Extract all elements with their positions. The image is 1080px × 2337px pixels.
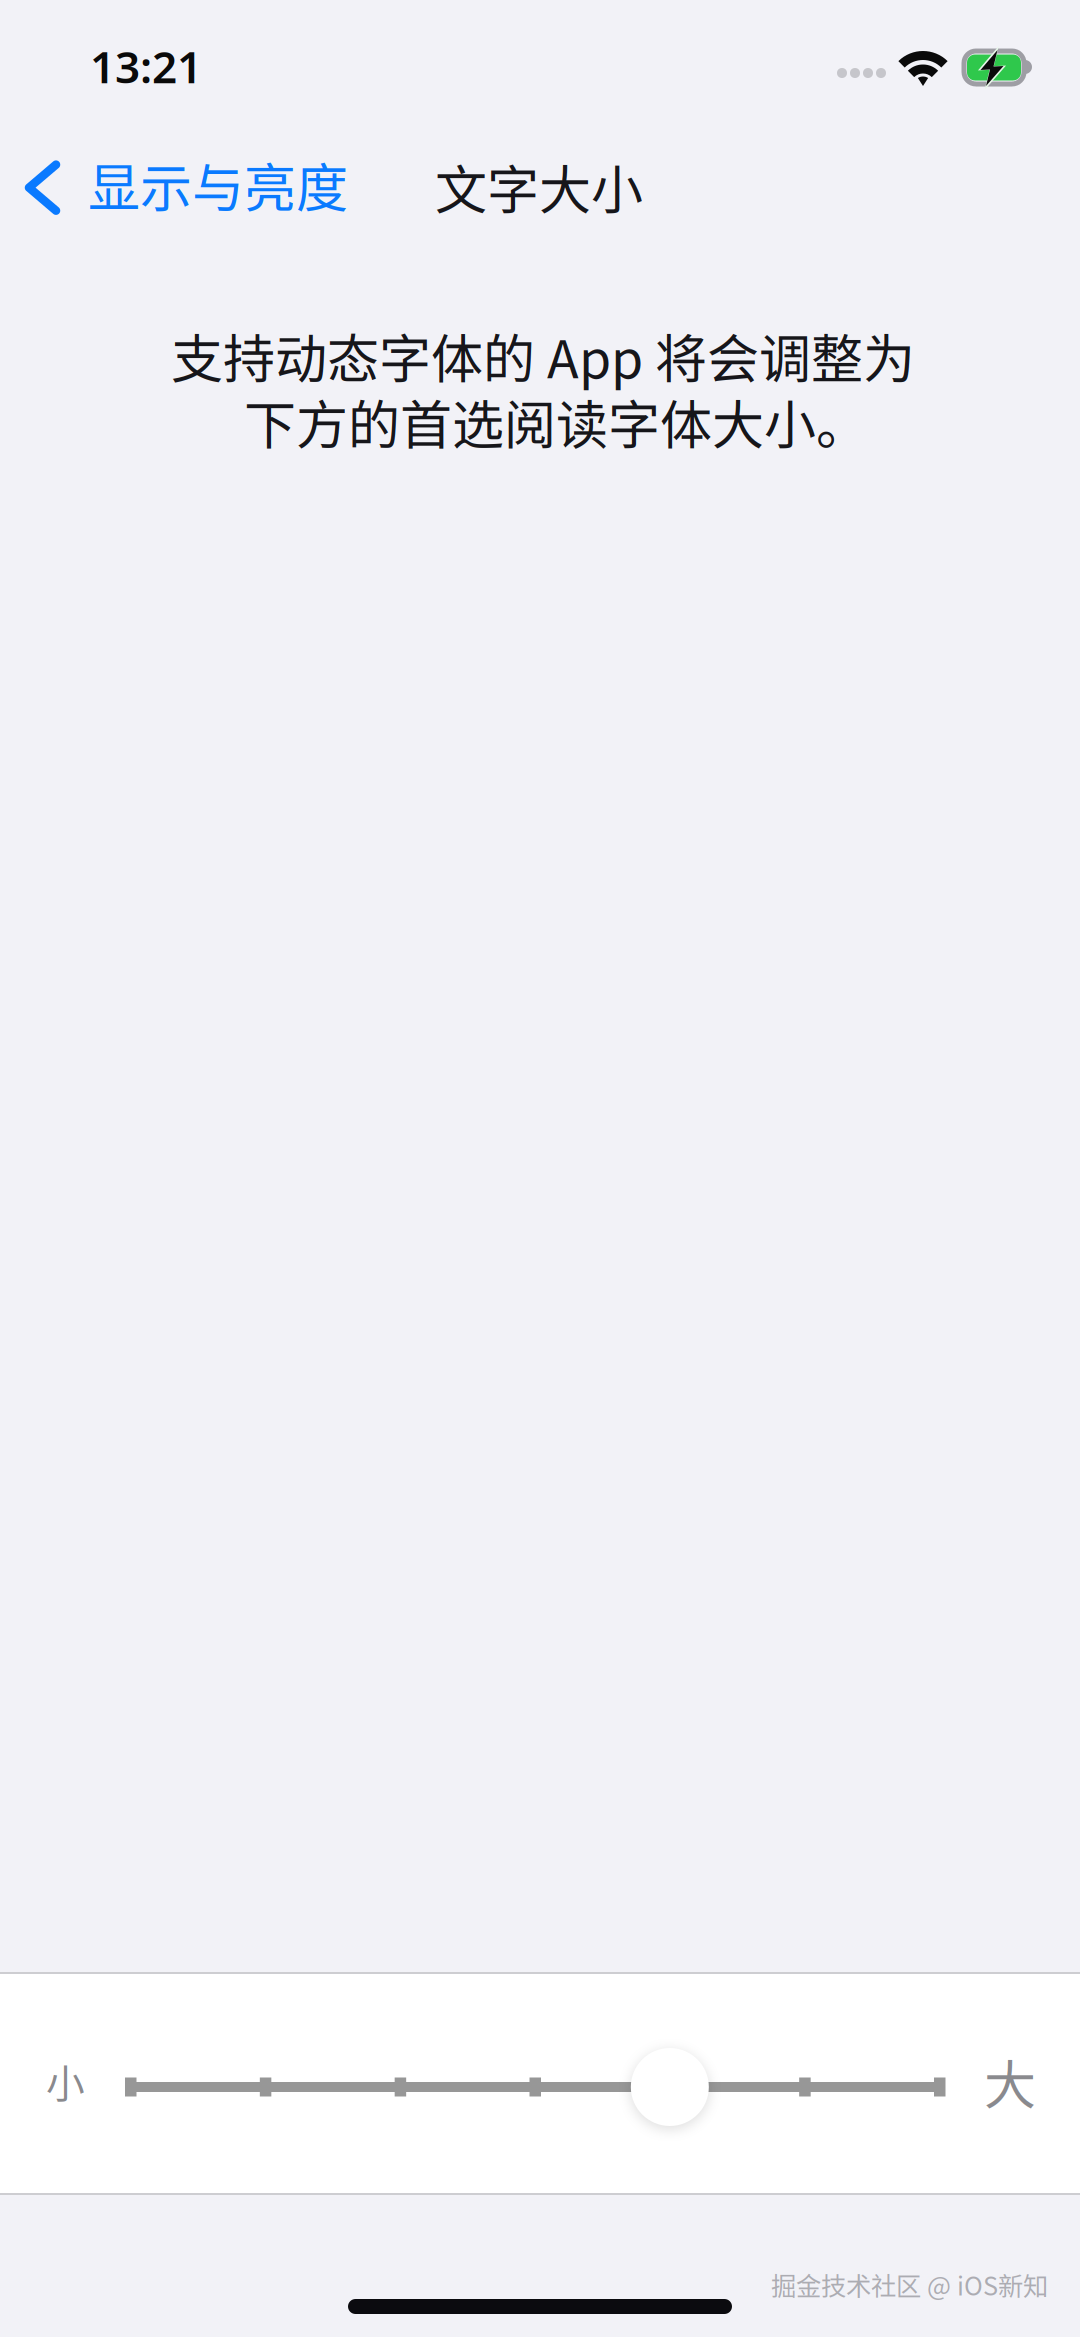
staticText: 支持动态字体的 App 将会调整为 <box>171 318 915 393</box>
staticText: 大 <box>984 2044 1036 2119</box>
staticText: 掘金技术社区 @ iOS新知 <box>771 2266 1048 2303</box>
staticText: 显示与亮度 <box>88 147 348 222</box>
button[interactable]: 文字大小 <box>125 2032 945 2142</box>
staticText: 13:21 <box>90 37 202 95</box>
staticText: 文字大小 <box>435 149 643 224</box>
staticText: 下方的首选阅读字体大小。 <box>244 384 868 459</box>
staticText: 小 <box>46 2053 85 2109</box>
button[interactable]: 显示与亮度 <box>3 129 364 240</box>
